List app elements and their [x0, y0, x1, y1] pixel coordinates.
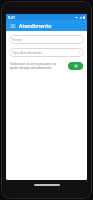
staticText: Nome — [12, 37, 81, 42]
button[interactable]: Add service — [68, 62, 83, 70]
staticText: Atendimento — [19, 22, 52, 29]
staticText: 9:41 — [8, 15, 16, 20]
staticText: Selecione os serviços para os quais dese… — [10, 61, 66, 70]
button[interactable]: Tipo Atendimento — [9, 48, 84, 57]
staticText: Tipo Atendimento — [12, 50, 78, 55]
button[interactable]: Open navigation menu — [9, 22, 16, 29]
button[interactable]: Nome — [9, 35, 84, 44]
